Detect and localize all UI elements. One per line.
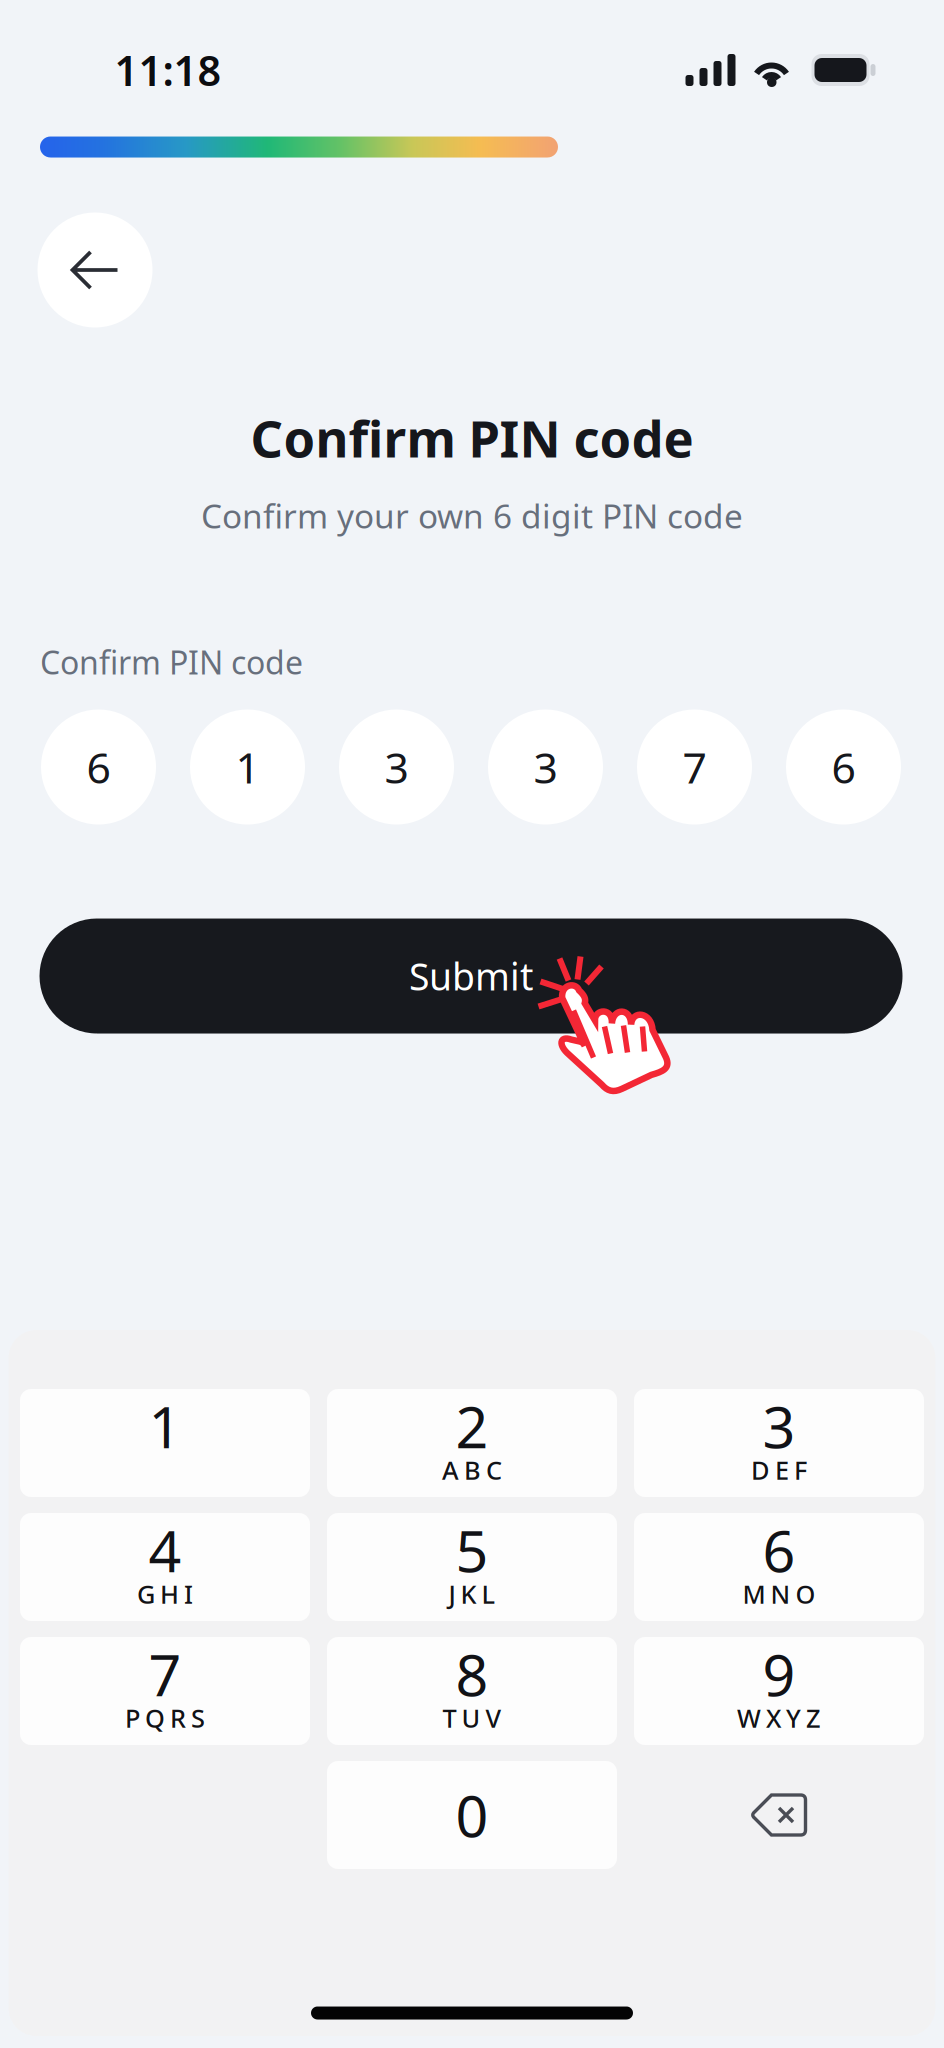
button[interactable]: 1 — [190, 709, 305, 824]
staticText: W — [737, 1701, 761, 1735]
staticText: B — [464, 1453, 481, 1487]
staticText: 11:18 — [114, 43, 221, 97]
button[interactable]: 7 — [20, 1637, 310, 1745]
button[interactable]: 6 — [634, 1513, 924, 1621]
staticText: 7 — [148, 1636, 181, 1712]
staticText: 3 — [533, 739, 557, 795]
staticText: J — [448, 1577, 455, 1611]
staticText: N — [770, 1577, 790, 1611]
staticText: H — [160, 1577, 179, 1611]
staticText: 7 — [682, 739, 706, 795]
staticText: Y — [786, 1701, 801, 1735]
staticText: I — [184, 1577, 193, 1611]
staticText: P — [125, 1701, 140, 1735]
button[interactable]: Submit — [39, 918, 902, 1033]
staticText: T — [442, 1701, 456, 1735]
staticText: V — [485, 1701, 501, 1735]
staticText: E — [775, 1453, 789, 1487]
staticText: S — [191, 1701, 205, 1735]
button[interactable]: 8 — [327, 1637, 617, 1745]
button[interactable]: 7 — [637, 709, 752, 824]
button[interactable]: 2 — [327, 1389, 617, 1497]
staticText: F — [794, 1453, 807, 1487]
button[interactable]: Delete — [634, 1761, 924, 1869]
button[interactable]: 0 — [327, 1761, 617, 1869]
button[interactable]: 3 — [634, 1389, 924, 1497]
staticText: 3 — [384, 739, 408, 795]
staticText: X — [766, 1701, 781, 1735]
staticText: U — [461, 1701, 480, 1735]
button[interactable]: 1 — [20, 1389, 310, 1497]
staticText: Submit — [409, 951, 533, 1001]
staticText: 6 — [762, 1512, 795, 1588]
staticText: D — [751, 1453, 770, 1487]
button[interactable]: 3 — [339, 709, 454, 824]
staticText: 5 — [455, 1512, 488, 1588]
staticText: Z — [806, 1701, 821, 1735]
button[interactable]: 4 — [20, 1513, 310, 1621]
staticText: A — [442, 1453, 459, 1487]
staticText: Q — [145, 1701, 165, 1735]
staticText: K — [460, 1577, 476, 1611]
staticText: Confirm your own 6 digit PIN code — [201, 493, 743, 538]
staticText: O — [795, 1577, 815, 1611]
staticText: L — [481, 1577, 495, 1611]
staticText: R — [170, 1701, 186, 1735]
staticText: 8 — [455, 1636, 488, 1712]
staticText: M — [742, 1577, 765, 1611]
staticText: 3 — [762, 1388, 795, 1464]
button[interactable]: 6 — [786, 709, 901, 824]
staticText: C — [486, 1453, 502, 1487]
staticText: Confirm PIN code — [250, 404, 693, 471]
button[interactable]: 9 — [634, 1637, 924, 1745]
staticText: 4 — [148, 1512, 181, 1588]
button[interactable]: 5 — [327, 1513, 617, 1621]
button[interactable]: 6 — [41, 709, 156, 824]
staticText: 0 — [455, 1777, 488, 1853]
staticText: G — [137, 1577, 155, 1611]
staticText: 1 — [148, 1388, 181, 1464]
staticText: 2 — [455, 1388, 488, 1464]
button[interactable]: 3 — [488, 709, 603, 824]
button[interactable]: Back — [37, 212, 152, 327]
staticText: 6 — [86, 739, 110, 795]
staticText: 1 — [235, 739, 259, 795]
staticText: 9 — [762, 1636, 795, 1712]
staticText: Confirm PIN code — [40, 641, 303, 683]
staticText: 6 — [831, 739, 855, 795]
